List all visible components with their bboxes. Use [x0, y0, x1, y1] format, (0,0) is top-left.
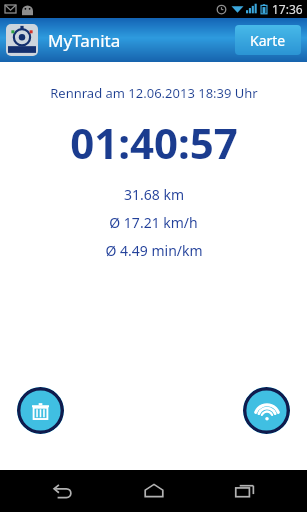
button[interactable]: Recent apps — [216, 470, 274, 512]
button[interactable]: Karte — [235, 25, 301, 55]
staticText: Karte — [250, 31, 286, 50]
button[interactable]: Home — [125, 470, 183, 512]
staticText: 31.68 km — [124, 185, 184, 204]
button[interactable]: Back — [33, 470, 91, 512]
button[interactable]: MyTanita — [6, 24, 38, 56]
staticText: Ø 17.21 km/h — [109, 213, 198, 232]
staticText: Ø 4.49 min/km — [105, 241, 203, 260]
staticText: MyTanita — [48, 29, 121, 52]
button[interactable]: Delete — [17, 387, 64, 434]
staticText: Rennrad am 12.06.2013 18:39 Uhr — [50, 84, 258, 102]
button[interactable]: Upload — [243, 387, 290, 434]
staticText: 01:40:57 — [70, 114, 238, 171]
staticText: 17:36 — [272, 1, 303, 17]
